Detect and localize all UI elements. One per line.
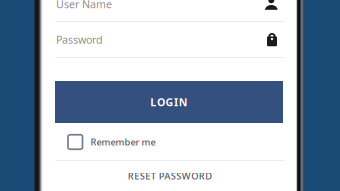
staticText: RESET PASSWORD [128,170,212,182]
button[interactable]: Password [42,21,296,57]
staticText: LOGIN [150,95,188,109]
staticText: User Name [56,0,112,11]
button[interactable]: LOGIN [55,81,283,123]
button[interactable]: Remember me [42,129,296,154]
staticText: Remember me [90,136,155,148]
button[interactable]: RESET PASSWORD [43,167,297,185]
button[interactable]: User Name [42,0,296,22]
staticText: Password [56,32,103,47]
